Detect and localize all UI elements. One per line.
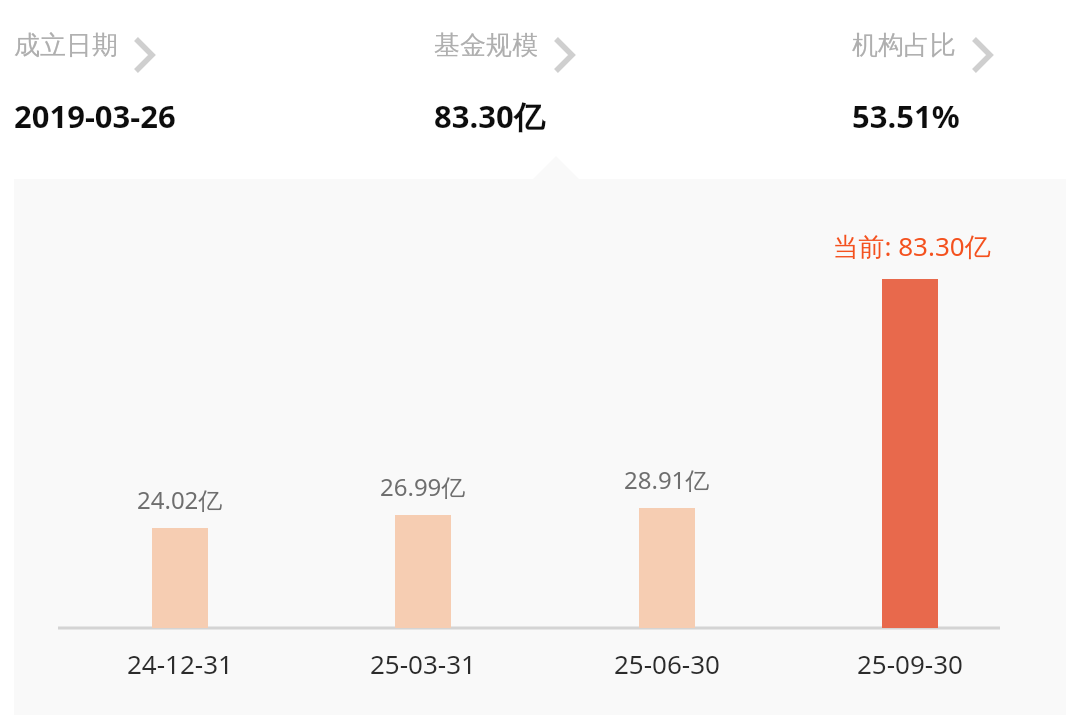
button[interactable]: 基金规模历史柱状图 <box>14 179 1066 715</box>
button[interactable]: 机构占比 53.51% <box>836 16 1080 144</box>
button[interactable]: 成立日期 2019-03-26 <box>0 16 300 144</box>
button[interactable]: 基金规模 83.30亿 <box>418 16 680 144</box>
